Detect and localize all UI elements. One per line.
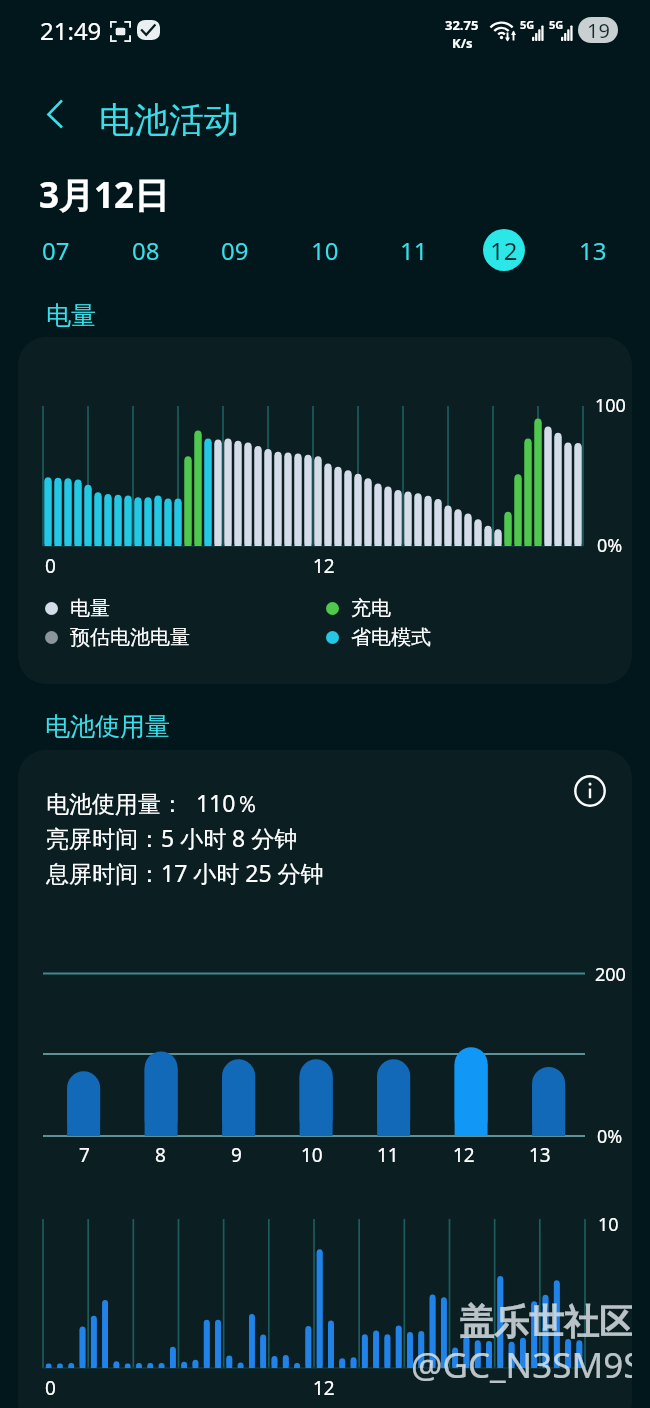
staticText: 07 [42, 234, 70, 267]
button[interactable]: 08 [125, 229, 167, 271]
staticText: 12 [490, 234, 518, 267]
button[interactable]: 100 [18, 337, 632, 684]
button[interactable]: 充电 [326, 595, 391, 621]
staticText: 电池活动 [99, 98, 239, 142]
staticText: 电量 [46, 300, 96, 331]
staticText: 9 [231, 1142, 242, 1168]
button[interactable]: 07 [35, 229, 77, 271]
button[interactable]: 预估电池电量 [45, 624, 190, 650]
staticText: 电池使用量： 110％ [46, 787, 259, 818]
staticText: 电量 [70, 596, 110, 621]
staticText: 13 [529, 1142, 551, 1168]
staticText: 预估电池电量 [70, 625, 190, 650]
staticText: 11 [400, 234, 428, 267]
button[interactable]: 09 [214, 229, 256, 271]
button[interactable]: 13 [572, 229, 614, 271]
staticText: 0 [45, 1375, 56, 1401]
button[interactable]: 10 [304, 229, 346, 271]
staticText: 8 [155, 1142, 166, 1168]
staticText: 10 [311, 234, 339, 267]
staticText: 3月12日 [39, 171, 170, 219]
staticText: 0 [45, 553, 56, 579]
staticText: 10 [301, 1142, 323, 1168]
button[interactable]: 电量 [45, 595, 110, 621]
staticText: 100 [595, 393, 626, 418]
staticText: 0% [597, 1124, 623, 1149]
staticText: 7 [79, 1142, 90, 1168]
staticText: 10 [598, 1212, 619, 1237]
staticText: 19 [587, 17, 610, 43]
staticText: 息屏时间：17 小时 25 分钟 [46, 857, 324, 888]
staticText: 亮屏时间：5 小时 8 分钟 [46, 822, 298, 853]
staticText: @GC_N3SM9S [411, 1341, 632, 1389]
button[interactable]: Back [33, 91, 79, 137]
staticText: 5G [549, 17, 564, 32]
staticText: 12 [453, 1142, 475, 1168]
button[interactable]: 省电模式 [326, 624, 431, 650]
staticText: K/s [452, 34, 473, 52]
staticText: 09 [221, 234, 249, 267]
button[interactable]: 12 [483, 229, 525, 271]
button[interactable]: 11 [393, 229, 435, 271]
staticText: 12 [313, 553, 335, 579]
staticText: 12 [313, 1375, 335, 1401]
staticText: 5G [520, 17, 535, 32]
staticText: 盖乐世社区 [459, 1300, 632, 1344]
staticText: 充电 [351, 596, 391, 621]
staticText: 21:49 [40, 14, 102, 47]
button[interactable]: 电池使用量： 110％ [18, 750, 632, 1408]
staticText: 08 [132, 234, 160, 267]
staticText: 11 [377, 1142, 399, 1168]
staticText: 省电模式 [351, 625, 431, 650]
staticText: 13 [579, 234, 607, 267]
staticText: 电池使用量 [45, 711, 170, 742]
staticText: 32.75 [445, 16, 479, 34]
staticText: 200 [595, 962, 626, 987]
staticText: 0% [597, 533, 623, 558]
button[interactable]: Info [574, 775, 606, 807]
